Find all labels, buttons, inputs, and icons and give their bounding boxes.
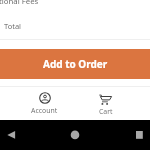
other: System navigation [0,120,150,150]
staticText: tional Fees [0,0,39,7]
staticText: Total [4,21,22,31]
staticText: Cart [99,107,113,116]
staticText: Add to Order [43,57,108,71]
staticText: Account [31,106,58,115]
button[interactable]: Add to Order [0,49,150,79]
button[interactable]: Account [14,87,75,120]
button[interactable]: Cart [75,87,136,120]
